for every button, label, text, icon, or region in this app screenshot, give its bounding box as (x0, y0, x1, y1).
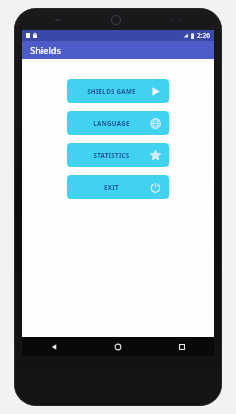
button[interactable]: LANGUAGE (67, 111, 169, 135)
button[interactable]: STATISTICS (67, 143, 169, 167)
staticText: LANGUAGE (93, 119, 130, 127)
other: Statistics (150, 150, 161, 161)
button[interactable]: Back (22, 337, 86, 356)
other: Exit (150, 182, 161, 193)
button[interactable]: SHIELDS GAME (67, 79, 169, 103)
staticText: 2:26 (197, 31, 210, 40)
staticText: Shields (30, 44, 61, 56)
staticText: SHIELDS GAME (87, 87, 136, 95)
button[interactable]: Home (86, 337, 150, 356)
button[interactable]: Recents (150, 337, 214, 356)
other: Language (150, 118, 161, 129)
button[interactable]: EXIT (67, 175, 169, 199)
staticText: EXIT (104, 183, 119, 191)
other: Play (150, 86, 161, 97)
staticText: STATISTICS (93, 151, 130, 159)
